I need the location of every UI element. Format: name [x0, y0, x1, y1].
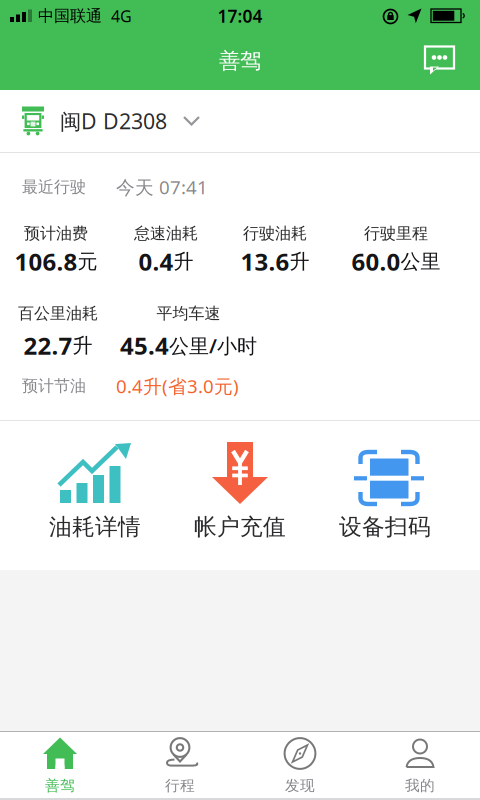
staticText: 17:04	[217, 4, 262, 27]
button[interactable]: 闽D D2308	[0, 90, 480, 152]
staticText: 最近行驶	[22, 177, 86, 197]
staticText: 行程	[165, 776, 195, 794]
staticText: 元	[77, 249, 97, 274]
staticText: 行驶里程	[364, 224, 428, 243]
staticText: 60.0	[351, 246, 400, 277]
button[interactable]: 我的	[360, 732, 480, 798]
staticText: 预计油费	[24, 224, 88, 243]
button[interactable]: 发现	[240, 732, 360, 798]
button[interactable]: 行程	[120, 732, 240, 798]
button[interactable]: 帐户充值	[180, 441, 300, 539]
staticText: 善驾	[45, 776, 75, 794]
staticText: 百公里油耗	[18, 304, 98, 323]
staticText: 4G	[111, 5, 132, 27]
button[interactable]: 油耗详情	[35, 441, 155, 539]
staticText: 13.6	[240, 246, 289, 277]
staticText: 45.4	[120, 330, 169, 361]
staticText: 升	[289, 249, 309, 274]
button[interactable]: 设备扫码	[325, 441, 445, 539]
staticText: 善驾	[219, 48, 261, 74]
staticText: 怠速油耗	[134, 224, 198, 243]
staticText: 我的	[405, 776, 435, 794]
staticText: 106.8	[14, 246, 77, 277]
staticText: 设备扫码	[339, 513, 431, 541]
staticText: 公里	[400, 249, 440, 274]
staticText: 预计节油	[22, 376, 86, 396]
button[interactable]: 善驾	[0, 732, 120, 798]
staticText: 22.7	[23, 330, 72, 361]
staticText: 中国联通	[38, 6, 102, 26]
staticText: 行驶油耗	[243, 224, 307, 243]
staticText: 升	[72, 333, 92, 358]
staticText: 0.4	[138, 246, 173, 277]
button[interactable]: 消息	[425, 46, 454, 75]
staticText: 今天 07:41	[116, 175, 208, 199]
staticText: 0.4升(省3.0元)	[116, 374, 239, 398]
staticText: 平均车速	[156, 304, 220, 323]
staticText: 闽D D2308	[60, 107, 167, 135]
staticText: 帐户充值	[194, 513, 286, 541]
staticText: 发现	[285, 776, 315, 794]
staticText: 公里/小时	[169, 332, 257, 359]
staticText: 升	[173, 249, 193, 274]
staticText: 油耗详情	[49, 513, 141, 541]
